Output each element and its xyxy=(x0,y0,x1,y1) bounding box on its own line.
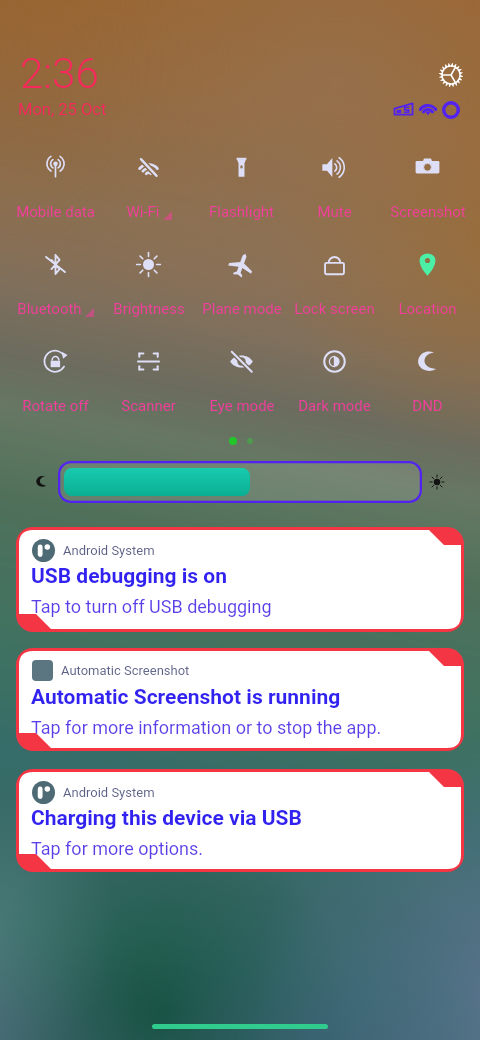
button[interactable]: Eye mode xyxy=(195,346,288,417)
staticText: Wi-Fi xyxy=(126,203,160,221)
staticText: Location xyxy=(398,300,457,318)
button[interactable]: Location xyxy=(381,249,474,320)
staticText: Mute xyxy=(317,203,352,221)
staticText: Mon, 25 Oct xyxy=(18,100,107,119)
staticText: Android System xyxy=(63,785,155,800)
button[interactable]: DND xyxy=(381,346,474,417)
other: Battery 5 percent xyxy=(393,102,414,116)
staticText: DND xyxy=(412,397,443,415)
button[interactable]: Settings xyxy=(439,63,463,87)
staticText: Scanner xyxy=(121,397,176,415)
other: Wi-Fi signal xyxy=(419,102,437,116)
button[interactable]: Automatic Screenshot xyxy=(16,648,464,751)
button[interactable]: Dark mode xyxy=(288,346,381,417)
staticText: Lock screen xyxy=(294,300,375,318)
button[interactable]: Lock screen xyxy=(288,249,381,320)
button[interactable]: Scanner xyxy=(102,346,195,417)
staticText: Tap for more options. xyxy=(31,838,204,859)
staticText: Tap to turn off USB debugging xyxy=(31,596,272,617)
staticText: Bluetooth xyxy=(17,300,82,318)
button[interactable]: Mute xyxy=(288,152,381,223)
staticText: Tap for more information or to stop the … xyxy=(31,717,382,738)
staticText: Plane mode xyxy=(202,300,282,318)
staticText: Rotate off xyxy=(22,397,89,415)
staticText: Mobile data xyxy=(16,203,95,221)
other: User profile xyxy=(442,101,460,119)
staticText: Brightness xyxy=(113,300,185,318)
button[interactable]: Android System xyxy=(16,527,464,632)
staticText: Automatic Screenshot is running xyxy=(31,685,341,710)
staticText: Dark mode xyxy=(298,397,371,415)
staticText: Flashlight xyxy=(209,203,274,221)
button[interactable]: Brightness xyxy=(58,461,422,503)
button[interactable]: Screenshot xyxy=(381,152,474,223)
button[interactable]: Flashlight xyxy=(195,152,288,223)
staticText: Eye mode xyxy=(209,397,275,415)
button[interactable]: Brightness xyxy=(102,249,195,320)
staticText: Charging this device via USB xyxy=(31,806,302,831)
staticText: USB debugging is on xyxy=(31,564,227,589)
staticText: Screenshot xyxy=(390,203,466,221)
staticText: Automatic Screenshot xyxy=(61,663,190,678)
staticText: Android System xyxy=(63,543,155,558)
button[interactable]: Rotate off xyxy=(9,346,102,417)
button[interactable]: Wi-Fi xyxy=(102,152,195,223)
button[interactable]: Bluetooth xyxy=(9,249,102,320)
button[interactable]: Android System xyxy=(16,769,464,872)
staticText: 2:36 xyxy=(20,49,99,98)
button[interactable]: Plane mode xyxy=(195,249,288,320)
button[interactable]: Mobile data xyxy=(9,152,102,223)
